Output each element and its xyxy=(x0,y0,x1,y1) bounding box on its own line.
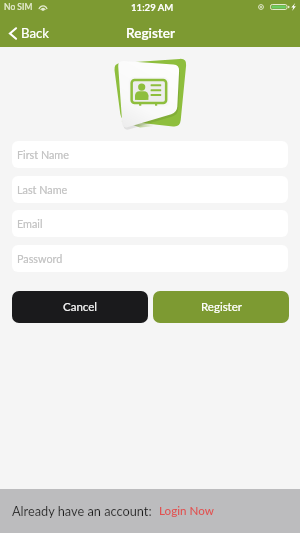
button[interactable]: Register xyxy=(153,291,289,323)
button[interactable]: Cancel xyxy=(12,291,148,323)
button[interactable]: Password xyxy=(12,245,288,272)
staticText: Email xyxy=(17,217,43,230)
button[interactable]: Login Now xyxy=(158,504,215,518)
staticText: Last Name xyxy=(17,183,68,196)
staticText: Cancel xyxy=(63,300,97,314)
staticText: 11:29 AM xyxy=(131,2,174,14)
button[interactable]: Email xyxy=(12,210,288,237)
button[interactable]: Last Name xyxy=(12,176,288,203)
staticText: Already have an account: xyxy=(12,503,152,518)
staticText: Back xyxy=(21,25,49,41)
staticText: Password xyxy=(17,252,63,265)
staticText: Login Now xyxy=(159,504,214,518)
staticText: First Name xyxy=(17,148,69,161)
button[interactable]: First Name xyxy=(12,141,288,168)
button[interactable]: Back xyxy=(9,22,55,44)
staticText: Register xyxy=(126,25,175,41)
staticText: Register xyxy=(201,300,242,314)
staticText: No SIM xyxy=(4,2,33,12)
